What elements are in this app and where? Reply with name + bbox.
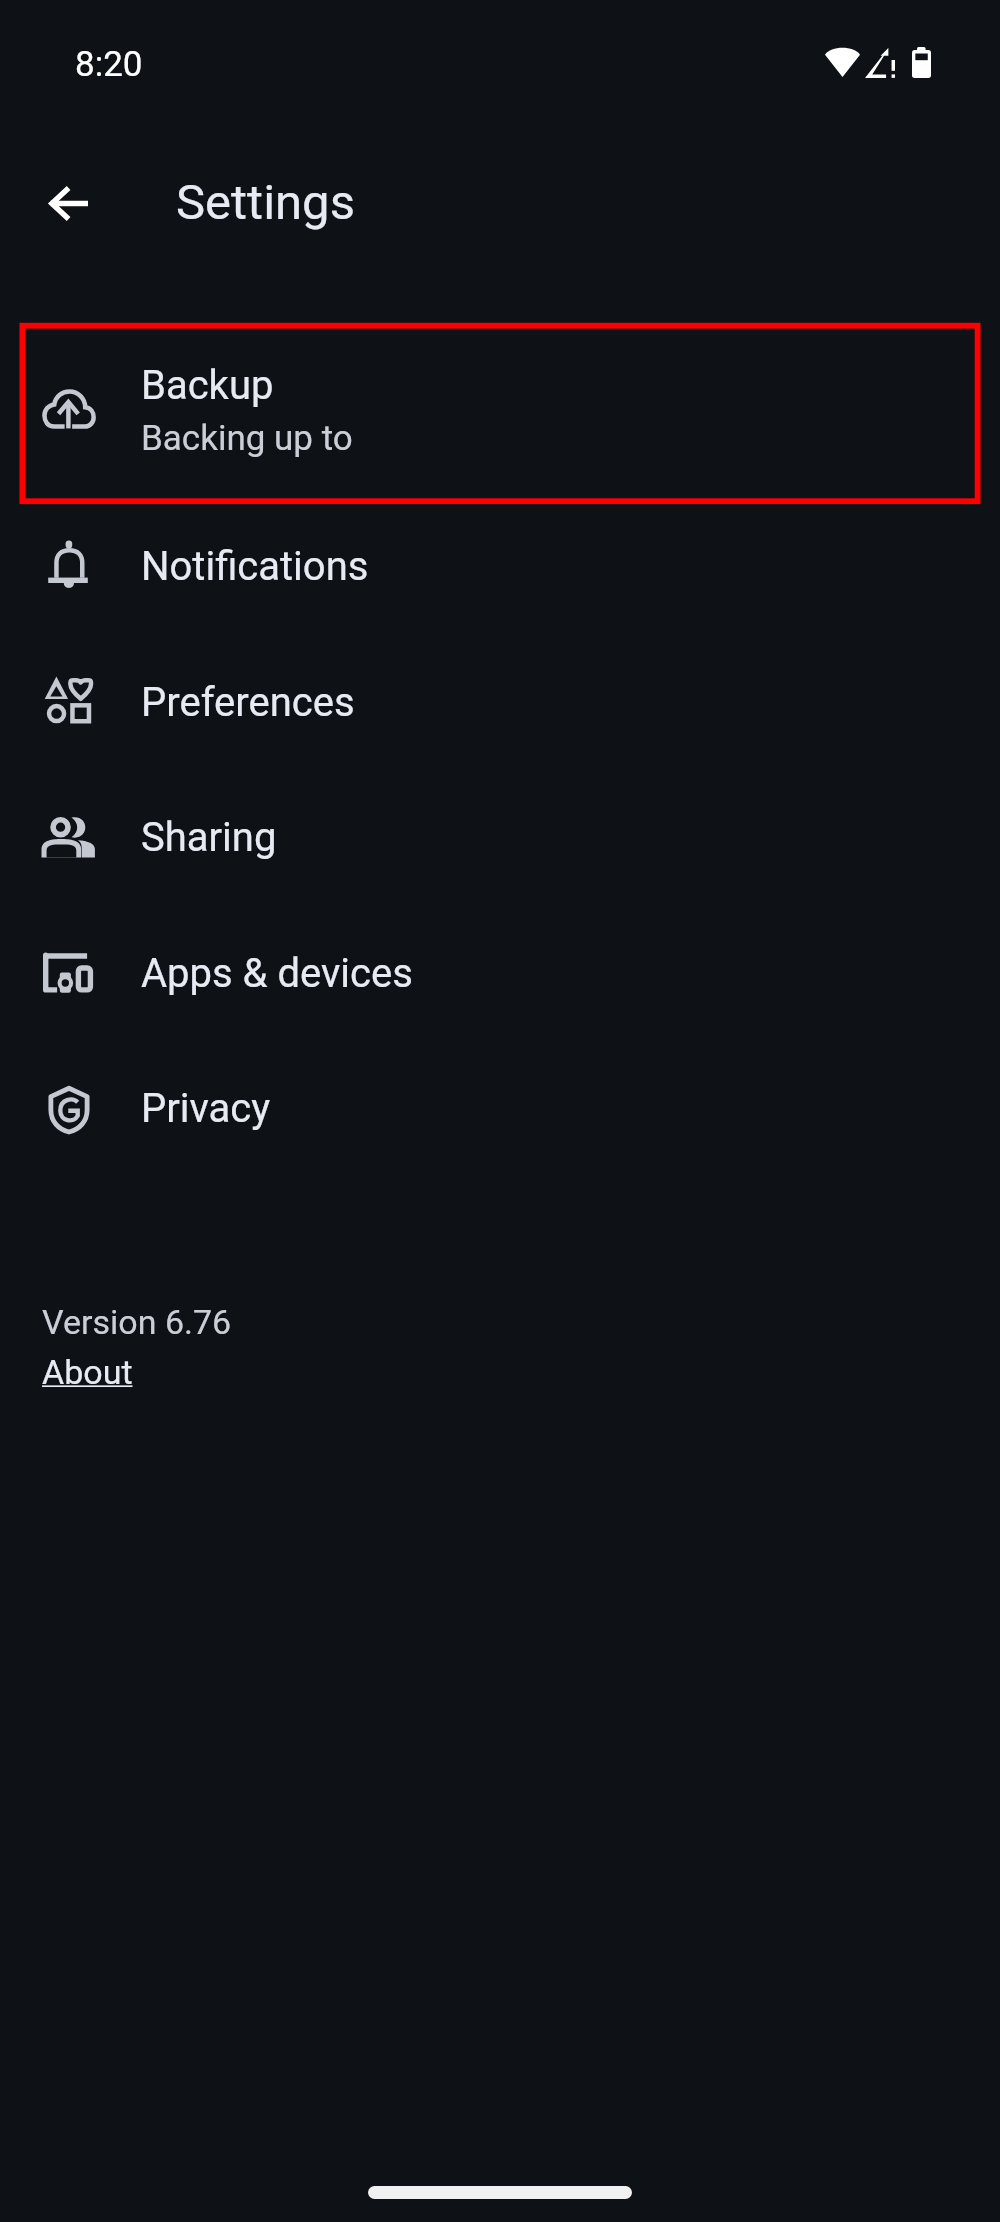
staticText: Backing up to <box>141 418 353 459</box>
staticText: Sharing <box>141 814 277 861</box>
button[interactable]: About <box>42 1352 133 1392</box>
staticText: Version 6.76 <box>42 1302 232 1342</box>
button[interactable]: Apps & devices <box>0 908 1000 1043</box>
staticText: Settings <box>176 174 355 231</box>
staticText: Preferences <box>141 679 355 726</box>
button[interactable]: Sharing <box>0 772 1000 908</box>
button[interactable]: Privacy <box>0 1043 1000 1178</box>
button[interactable]: Backup <box>0 323 1000 504</box>
staticText: Backup <box>141 362 274 409</box>
button[interactable]: Notifications <box>0 504 1000 637</box>
staticText: 8:20 <box>75 44 143 85</box>
staticText: Apps & devices <box>141 950 413 997</box>
staticText: Privacy <box>141 1085 271 1132</box>
button[interactable]: Preferences <box>0 637 1000 772</box>
button[interactable]: Back <box>24 159 112 247</box>
staticText: Notifications <box>141 543 369 590</box>
